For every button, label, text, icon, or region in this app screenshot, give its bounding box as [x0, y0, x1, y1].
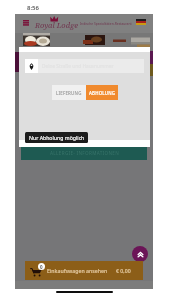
- button[interactable]: Location: [25, 59, 144, 73]
- button[interactable]: Language: [136, 19, 146, 25]
- staticText: Nur Abholung möglich: [29, 134, 85, 141]
- other: Location: [29, 63, 34, 70]
- staticText: ABHOLUNG: [89, 90, 116, 96]
- staticText: LIEFERUNG: [56, 90, 82, 96]
- staticText: ALLERGIE- INFORMATIONEN: [50, 150, 119, 156]
- staticText: 0: [40, 264, 43, 270]
- button[interactable]: LIEFERUNG: [52, 85, 86, 100]
- button[interactable]: Menu: [20, 16, 32, 28]
- button[interactable]: 0: [25, 261, 143, 280]
- staticText: Royal Lodge: [35, 20, 78, 30]
- button[interactable]: Scroll to top: [132, 246, 148, 262]
- staticText: Einkaufswagen ansehen: [47, 267, 108, 274]
- staticText: € 0,00: [116, 267, 131, 274]
- button[interactable]: ABHOLUNG: [86, 85, 118, 100]
- staticText: 8:56: [27, 4, 39, 12]
- staticText: Indische Spezialitäten-Restaurant: [80, 21, 132, 25]
- button[interactable]: ALLERGIE- INFORMATIONEN: [21, 147, 147, 160]
